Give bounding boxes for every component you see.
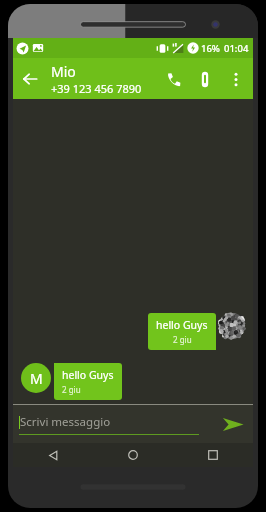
button[interactable]: M [21,363,51,393]
button[interactable]: Home [93,443,173,467]
staticText: 01:04 [224,42,249,55]
staticText: Scrivi messaggio [20,414,111,430]
button[interactable]: Back [13,62,47,96]
staticText: 2 giu [62,384,81,395]
button[interactable]: Scrivi messaggio [19,414,213,435]
button[interactable]: Back [13,443,93,467]
button[interactable]: hello Guys [54,363,122,400]
button[interactable]: Send [219,410,247,438]
button[interactable]: More options [221,64,251,94]
staticText: +39 123 456 7890 [51,81,142,96]
button[interactable]: Recent apps [173,443,253,467]
staticText: hello Guys [156,318,208,332]
staticText: 16% [201,42,220,55]
staticText: hello Guys [62,368,114,382]
button[interactable]: Attach [189,63,221,95]
staticText: Mio [51,62,76,81]
button[interactable]: Call [157,63,189,95]
staticText: M [30,369,43,388]
staticText: 2 giu [173,334,192,345]
button[interactable]: hello Guys [148,313,216,350]
